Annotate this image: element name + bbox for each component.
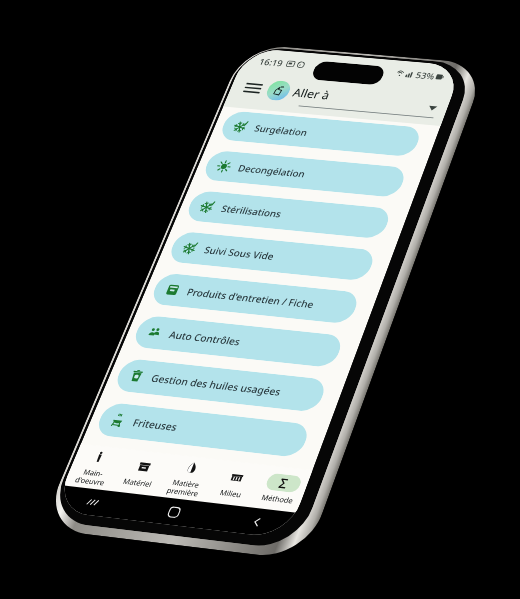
button[interactable]: Suivi Sous Vide — [20, 339, 337, 392]
button[interactable]: Decongélation — [20, 195, 337, 248]
button[interactable]: Auto Contrôles — [20, 483, 337, 536]
staticText: Suivi Sous Vide — [72, 355, 183, 376]
button[interactable]: Produits d'entretien / Fiche — [20, 411, 337, 464]
staticText: Auto Contrôles — [72, 499, 183, 520]
staticText: Stérilisations — [72, 283, 168, 304]
staticText: Decongélation — [72, 211, 180, 232]
button[interactable]: Surgélation — [20, 123, 337, 176]
staticText: Produits d'entretien / Fiche — [72, 427, 272, 448]
button[interactable]: Stérilisations — [20, 267, 337, 320]
